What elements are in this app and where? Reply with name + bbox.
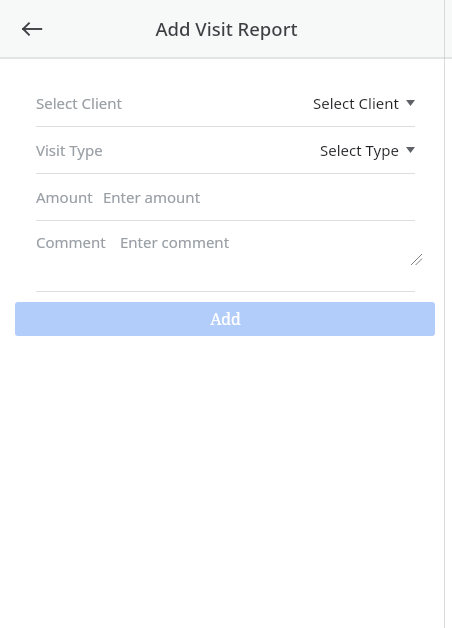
button[interactable]: Comment	[0, 221, 452, 291]
staticText: Select Client	[313, 93, 399, 113]
button[interactable]: Visit Type	[0, 127, 452, 173]
staticText: Enter comment	[120, 232, 230, 252]
staticText: Comment	[36, 232, 106, 252]
staticText: Enter amount	[103, 187, 201, 207]
staticText: Add Visit Report	[155, 16, 298, 41]
staticText: Add	[210, 308, 241, 330]
button[interactable]: Select Client	[0, 80, 452, 126]
staticText: Visit Type	[36, 140, 103, 160]
button[interactable]: Add	[15, 302, 435, 336]
staticText: Select Client	[36, 93, 122, 113]
staticText: Amount	[36, 187, 93, 207]
staticText: Select Type	[320, 140, 399, 160]
button[interactable]: Amount	[0, 174, 452, 220]
button[interactable]: Back	[16, 13, 48, 45]
